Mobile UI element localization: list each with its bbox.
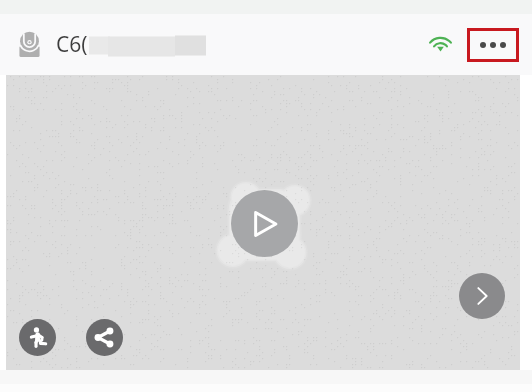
button[interactable]: Next camera [459, 273, 505, 319]
button[interactable]: Wi-Fi signal [420, 25, 460, 65]
button[interactable]: Share [86, 319, 123, 356]
button[interactable]: Play live video [231, 190, 298, 257]
button[interactable]: More options [467, 28, 519, 62]
button[interactable]: Motion detection [19, 319, 56, 356]
staticText: C6( [56, 30, 88, 59]
